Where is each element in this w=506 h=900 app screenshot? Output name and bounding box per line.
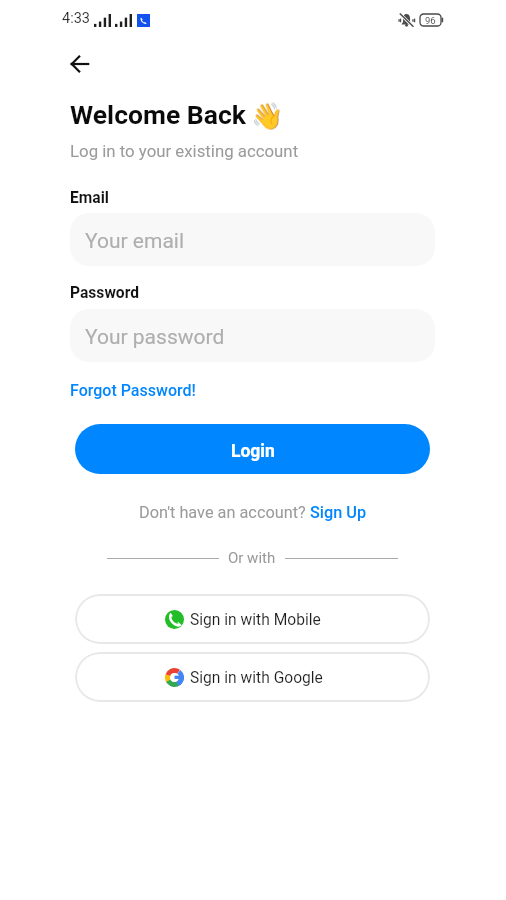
button[interactable]: Sign Up xyxy=(310,503,367,522)
button[interactable]: Sign in with Mobile xyxy=(75,594,430,644)
staticText: Sign in with Google xyxy=(190,669,323,687)
button[interactable]: Your email xyxy=(70,213,435,266)
staticText: Login xyxy=(231,441,275,462)
staticText: Password xyxy=(70,284,140,302)
staticText: 96 xyxy=(425,15,436,26)
staticText: Or with xyxy=(228,549,276,567)
button[interactable]: Forgot Password! xyxy=(70,381,196,400)
button[interactable]: Sign in with Google xyxy=(75,652,430,702)
staticText: Welcome Back xyxy=(70,99,246,130)
button[interactable]: Back xyxy=(58,42,102,86)
staticText: Your email xyxy=(85,229,185,254)
staticText: Forgot Password! xyxy=(70,381,196,400)
staticText: Don't have an account? xyxy=(139,503,310,522)
staticText: 4:33 xyxy=(62,10,90,27)
button[interactable]: Your password xyxy=(70,309,435,362)
staticText: Your password xyxy=(85,325,225,350)
staticText: 👋 xyxy=(251,101,284,132)
button[interactable]: Login xyxy=(75,424,430,474)
staticText: Sign in with Mobile xyxy=(190,611,321,629)
staticText: Sign Up xyxy=(310,503,367,522)
staticText: Log in to your existing account xyxy=(70,141,299,161)
staticText: Email xyxy=(70,189,109,207)
